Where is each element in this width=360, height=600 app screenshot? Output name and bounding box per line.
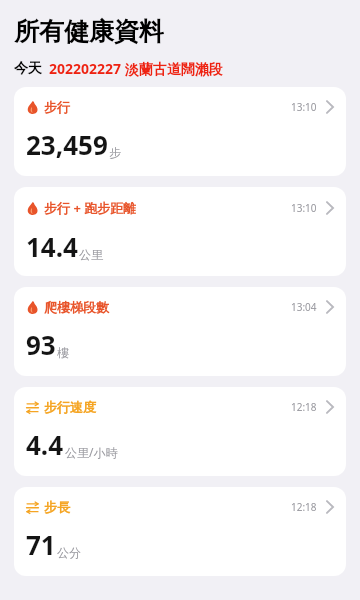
staticText: 步行速度 (44, 399, 96, 415)
staticText: 13:10 (291, 201, 317, 215)
staticText: 步長 (44, 499, 70, 515)
staticText: 12:18 (291, 400, 317, 414)
staticText: 今天 (14, 60, 42, 78)
button[interactable]: 步行 (14, 87, 346, 176)
staticText: 12:18 (291, 500, 317, 514)
staticText: 步行 + 跑步距離 (44, 199, 137, 217)
staticText: 爬樓梯段數 (44, 299, 109, 315)
staticText: 71 (26, 527, 56, 562)
staticText: 93 (26, 327, 56, 362)
staticText: 所有健康資料 (14, 16, 164, 47)
button[interactable]: 爬樓梯段數 (14, 287, 346, 376)
staticText: 樓 (57, 345, 69, 360)
staticText: 步 (109, 145, 121, 160)
staticText: 公里/小時 (65, 444, 118, 460)
staticText: 202202227 淡蘭古道闊瀨段 (49, 59, 223, 78)
button[interactable]: 步行 + 跑步距離 (14, 187, 346, 276)
staticText: 13:10 (291, 100, 317, 114)
staticText: 公分 (57, 545, 81, 560)
staticText: 4.4 (26, 427, 64, 462)
staticText: 公里 (79, 247, 103, 262)
button[interactable]: 步長 (14, 487, 346, 576)
staticText: 13:04 (291, 300, 317, 314)
button[interactable]: 步行速度 (14, 387, 346, 476)
staticText: 14.4 (26, 229, 78, 264)
staticText: 步行 (44, 99, 70, 115)
staticText: 23,459 (26, 127, 108, 162)
